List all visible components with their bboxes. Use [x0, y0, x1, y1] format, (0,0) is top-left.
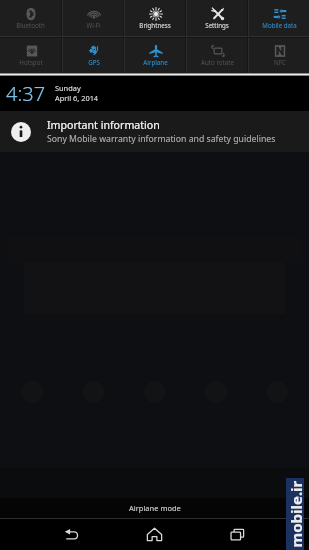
button[interactable]: GPS	[63, 38, 123, 73]
button[interactable]: Hotspot	[0, 38, 61, 73]
button[interactable]: Bluetooth	[0, 0, 61, 36]
button[interactable]: Brightness	[125, 0, 185, 36]
button[interactable]: Mobile data	[249, 0, 309, 36]
button[interactable]: Auto rotate	[187, 38, 247, 73]
button[interactable]: Important information	[0, 111, 309, 152]
staticText: Airplane	[143, 58, 168, 66]
staticText: NFC	[274, 58, 286, 66]
button[interactable]: Wi-Fi	[63, 0, 123, 36]
staticText: Airplane mode	[129, 503, 181, 513]
staticText: Auto rotate	[201, 58, 234, 66]
button[interactable]: Home	[113, 519, 196, 550]
staticText: Settings	[205, 21, 229, 29]
staticText: Wi-Fi	[86, 21, 101, 29]
staticText: Mobile data	[262, 21, 297, 29]
staticText: Important information	[47, 118, 160, 132]
button[interactable]: Airplane	[125, 38, 185, 73]
button[interactable]: NFC	[249, 38, 309, 73]
button[interactable]: Settings	[187, 0, 247, 36]
staticText: Sony Mobile warranty information and saf…	[47, 133, 276, 145]
staticText: 4:37	[6, 80, 46, 107]
staticText: Sunday	[55, 83, 81, 93]
button[interactable]: Back	[30, 519, 113, 550]
staticText: April 6, 2014	[55, 93, 99, 103]
staticText: mobile.ir	[285, 480, 305, 547]
button[interactable]: Recent apps	[196, 519, 279, 550]
staticText: GPS	[88, 58, 100, 66]
staticText: Bluetooth	[16, 21, 45, 29]
staticText: Brightness	[139, 21, 171, 29]
staticText: Hotspot	[19, 58, 43, 66]
